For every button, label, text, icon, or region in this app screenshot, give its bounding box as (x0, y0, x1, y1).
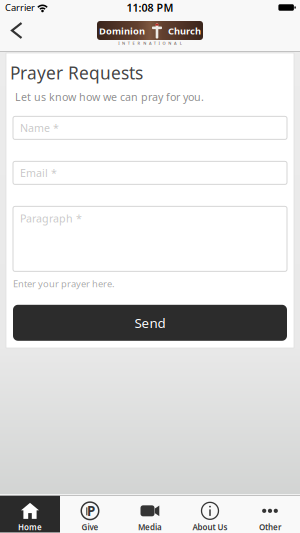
staticText: Home (18, 522, 42, 532)
button[interactable]: Back (0, 18, 22, 38)
staticText: INTERNATIONAL (118, 40, 182, 46)
staticText: Email * (20, 166, 57, 180)
button[interactable]: About Us (180, 496, 240, 532)
button[interactable]: Media (120, 496, 180, 532)
staticText: Media (138, 522, 162, 532)
staticText: Church (168, 25, 201, 37)
button[interactable]: Send (13, 305, 287, 341)
staticText: Other (259, 522, 281, 532)
button[interactable]: Paragraph (13, 206, 287, 271)
staticText: Let us know how we can pray for you. (15, 90, 204, 104)
staticText: Give (81, 522, 98, 532)
staticText: P (87, 502, 95, 520)
staticText: Dominion (99, 25, 145, 37)
button[interactable]: Home (0, 496, 60, 532)
button[interactable]: Other (240, 496, 300, 532)
button[interactable]: P (60, 496, 120, 532)
staticText: About Us (192, 522, 227, 532)
button[interactable]: Name * (13, 116, 287, 139)
staticText: Prayer Requests (10, 61, 143, 84)
staticText: Carrier (5, 1, 35, 14)
staticText: Enter your prayer here. (13, 277, 115, 290)
staticText: 11:08 PM (126, 0, 173, 15)
staticText: Name * (20, 121, 59, 135)
staticText: Send (134, 314, 165, 332)
button[interactable]: Email * (13, 161, 287, 184)
staticText: Paragraph * (20, 211, 82, 226)
